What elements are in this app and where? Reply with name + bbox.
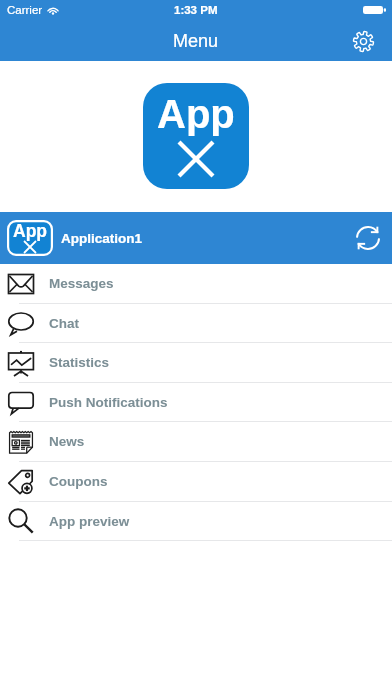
staticText: App	[13, 221, 48, 241]
staticText: News	[49, 434, 85, 449]
staticText: Push Notifications	[49, 395, 168, 410]
button[interactable]: App	[0, 212, 392, 264]
staticText: Messages	[49, 276, 114, 291]
button[interactable]: Messages	[0, 264, 392, 303]
button[interactable]: Refresh	[351, 221, 385, 255]
staticText: Application1	[61, 231, 143, 246]
button[interactable]: App preview	[0, 502, 392, 540]
staticText: Coupons	[49, 474, 108, 489]
button[interactable]: Chat	[0, 304, 392, 342]
button[interactable]: News	[0, 422, 392, 461]
staticText: App preview	[49, 514, 130, 529]
staticText: Chat	[49, 316, 79, 331]
staticText: Menu	[173, 31, 219, 51]
staticText: Statistics	[49, 355, 110, 370]
button[interactable]: Statistics	[0, 343, 392, 382]
staticText: App	[157, 92, 235, 137]
staticText: 1:33 PM	[174, 4, 218, 17]
button[interactable]: Coupons	[0, 462, 392, 501]
button[interactable]: Settings	[347, 25, 379, 57]
button[interactable]: Push Notifications	[0, 383, 392, 421]
staticText: Carrier	[7, 4, 43, 17]
